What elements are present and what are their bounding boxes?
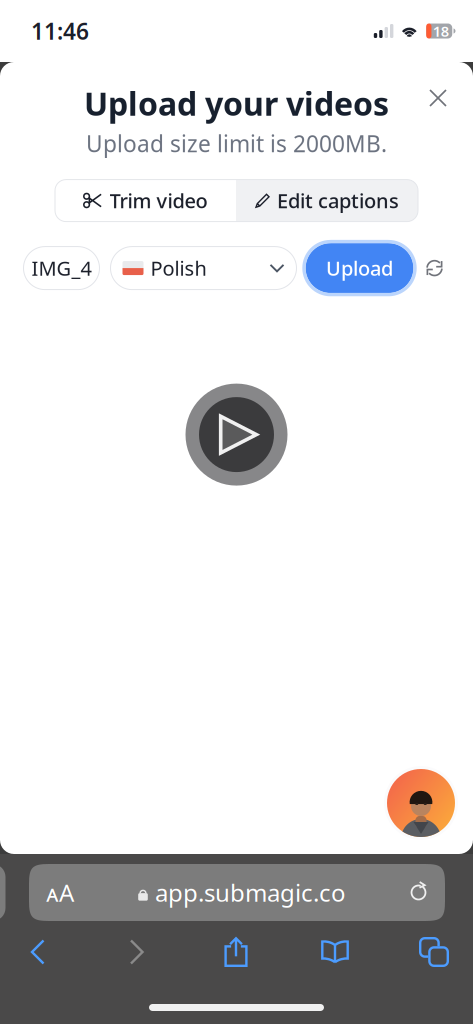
staticText: Trim video bbox=[109, 187, 207, 214]
button[interactable]: Share bbox=[208, 933, 264, 971]
button[interactable]: Polish bbox=[110, 247, 296, 290]
staticText: Edit captions bbox=[277, 187, 399, 214]
button[interactable]: Upload bbox=[305, 243, 413, 293]
staticText: IMG_4 bbox=[31, 255, 91, 281]
staticText: app.submagic.co bbox=[155, 877, 346, 908]
button[interactable]: ᴀA bbox=[29, 864, 445, 921]
button[interactable]: Back bbox=[10, 933, 66, 971]
button[interactable]: Close bbox=[418, 78, 458, 118]
button[interactable]: IMG_4 bbox=[23, 247, 99, 290]
staticText: ᴀA bbox=[46, 877, 74, 908]
button[interactable]: Bookmarks bbox=[307, 933, 363, 971]
staticText: Polish bbox=[150, 255, 206, 281]
staticText: Upload size limit is 2000MB. bbox=[86, 128, 387, 159]
button[interactable]: Forward bbox=[109, 933, 165, 971]
staticText: Upload your videos bbox=[84, 82, 389, 124]
button[interactable]: Trim video bbox=[55, 180, 236, 222]
button[interactable]: Tabs bbox=[406, 933, 462, 971]
staticText: Upload bbox=[326, 255, 393, 281]
staticText: 11:46 bbox=[31, 16, 89, 46]
button[interactable]: Edit captions bbox=[236, 180, 418, 222]
staticText: 18 bbox=[433, 21, 449, 41]
button[interactable]: Refresh bbox=[419, 253, 449, 283]
